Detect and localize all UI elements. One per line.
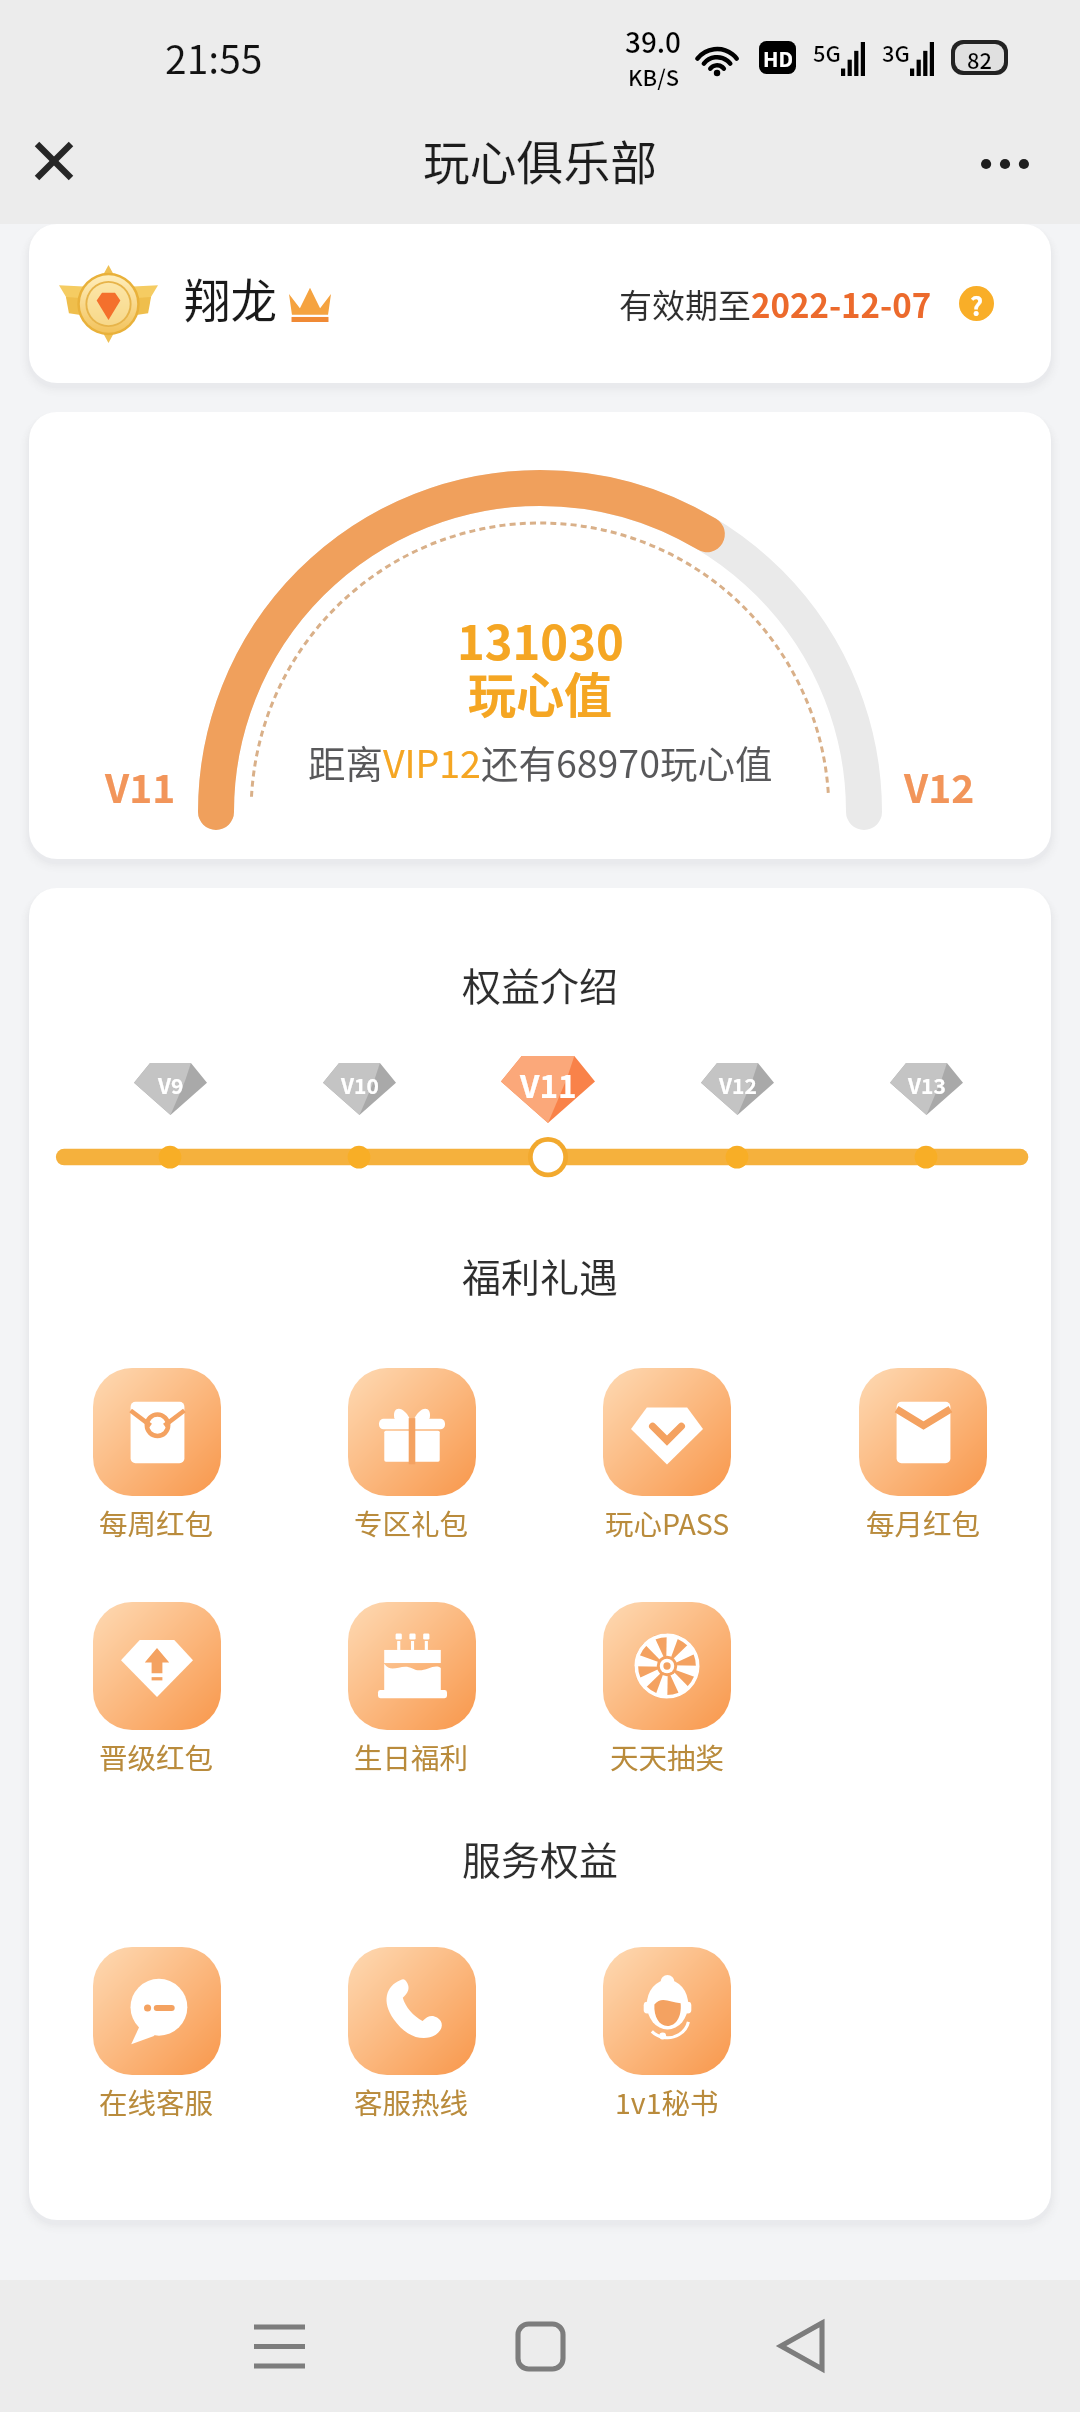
staticText: 福利礼遇	[462, 1247, 619, 1303]
button[interactable]: 1v1秘书	[539, 1947, 795, 2122]
staticText: V11	[105, 758, 176, 814]
staticText: 有效期至2022-12-07	[619, 280, 932, 328]
button[interactable]: 翔龙	[29, 224, 1051, 383]
staticText: V12	[719, 1070, 757, 1100]
button[interactable]: 生日福利	[284, 1602, 539, 1777]
button[interactable]: Level V13	[890, 1063, 963, 1115]
button[interactable]: Level V11	[501, 1056, 595, 1123]
staticText: KB/S	[628, 61, 679, 93]
button[interactable]: Level V12	[701, 1063, 774, 1115]
staticText: V9	[158, 1070, 184, 1100]
staticText: V12	[904, 758, 975, 814]
staticText: 玩心俱乐部	[423, 126, 657, 194]
button[interactable]: 天天抽奖	[539, 1602, 795, 1777]
staticText: V13	[908, 1070, 946, 1100]
staticText: 5G	[813, 37, 841, 69]
button[interactable]: More options	[960, 119, 1050, 209]
staticText: 距离VIP12还有68970玩心值	[308, 734, 773, 788]
button[interactable]: Recents	[210, 2280, 348, 2412]
staticText: 每周红包	[99, 1502, 214, 1543]
staticText: 专区礼包	[354, 1502, 469, 1543]
staticText: 21:55	[165, 29, 263, 85]
staticText: ?	[970, 286, 984, 321]
staticText: 生日福利	[354, 1736, 469, 1777]
button[interactable]: Close	[12, 119, 96, 203]
staticText: 玩心PASS	[605, 1502, 730, 1543]
button[interactable]: Home	[471, 2280, 609, 2412]
staticText: HD	[763, 43, 793, 73]
button[interactable]: 客服热线	[284, 1947, 539, 2122]
staticText: 玩心值	[468, 657, 613, 727]
staticText: V11	[520, 1061, 577, 1107]
button[interactable]: 专区礼包	[284, 1368, 539, 1543]
button[interactable]: 晋级红包	[29, 1602, 284, 1777]
button[interactable]: 每月红包	[795, 1368, 1051, 1543]
staticText: 1v1秘书	[615, 2081, 719, 2122]
staticText: 131030	[457, 605, 624, 673]
staticText: 3G	[882, 37, 910, 69]
button[interactable]: 玩心PASS	[539, 1368, 795, 1543]
staticText: 翔龙	[184, 264, 277, 331]
button[interactable]: Level V9	[134, 1063, 207, 1115]
staticText: 82	[967, 44, 992, 71]
button[interactable]: 每周红包	[29, 1368, 284, 1543]
staticText: 客服热线	[354, 2081, 469, 2122]
staticText: 每月红包	[866, 1502, 981, 1543]
staticText: 权益介绍	[462, 956, 619, 1012]
staticText: V10	[341, 1070, 379, 1100]
button[interactable]: Back	[732, 2280, 870, 2412]
button[interactable]: Help	[959, 286, 994, 321]
staticText: 39.0	[625, 21, 682, 61]
button[interactable]: Level V10	[323, 1063, 396, 1115]
button[interactable]: 在线客服	[29, 1947, 284, 2122]
staticText: 服务权益	[462, 1830, 619, 1886]
staticText: 晋级红包	[99, 1736, 214, 1777]
staticText: 在线客服	[99, 2081, 214, 2122]
staticText: 天天抽奖	[610, 1736, 725, 1777]
